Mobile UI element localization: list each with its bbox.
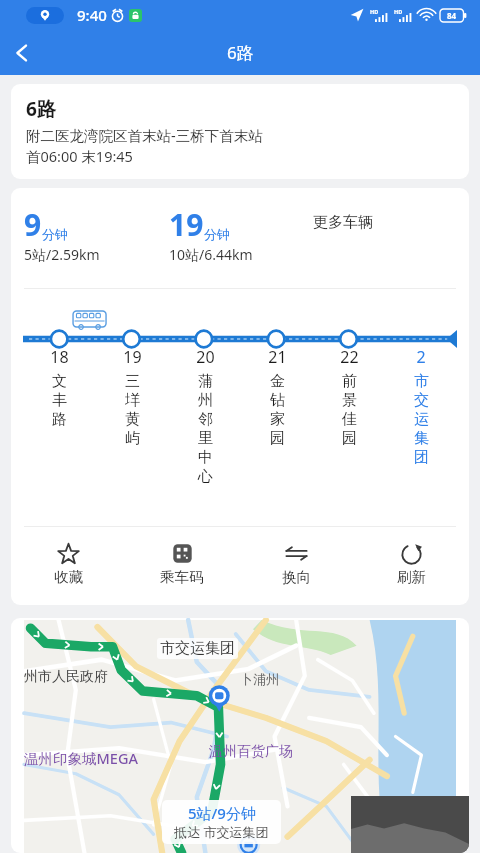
staticText: 温州印象城MEGA (24, 748, 138, 768)
staticText: 景 (342, 391, 357, 410)
staticText: 9:40 (77, 5, 107, 25)
staticText: 金 (270, 372, 285, 391)
staticText: 前 (342, 372, 357, 391)
staticText: 佳 (342, 410, 357, 429)
staticText: 园 (342, 429, 357, 448)
staticText: 运 (414, 410, 429, 429)
staticText: 22 (340, 346, 359, 368)
staticText: 19 (169, 204, 204, 245)
staticText: 黄 (125, 410, 140, 429)
staticText: 换向 (282, 568, 311, 586)
staticText: 园 (270, 429, 285, 448)
staticText: 邻 (198, 410, 213, 429)
staticText: 2 (416, 346, 426, 368)
staticText: 10站/6.44km (169, 245, 253, 264)
staticText: 州市人民政府 (24, 668, 108, 686)
staticText: 文 (52, 372, 67, 391)
staticText: 6路 (26, 96, 56, 122)
staticText: 蒲 (198, 372, 213, 391)
staticText: 交 (414, 391, 429, 410)
staticText: 收藏 (54, 568, 83, 586)
staticText: 里 (198, 429, 213, 448)
staticText: 集 (414, 429, 429, 448)
staticText: 21 (268, 346, 287, 368)
button[interactable]: Ride QR code (125, 540, 239, 588)
staticText: 抵达 市交运集团 (174, 823, 269, 841)
staticText: 市交运集团 (160, 639, 235, 658)
staticText: 6路 (227, 41, 254, 64)
button[interactable]: Refresh (354, 540, 469, 588)
button[interactable]: Back (0, 31, 44, 75)
staticText: 市 (414, 372, 429, 391)
staticText: 屿 (125, 429, 140, 448)
button[interactable]: Favorite (11, 540, 125, 588)
button[interactable]: 更多车辆 (313, 213, 373, 232)
staticText: 卜浦州 (240, 671, 279, 687)
staticText: 团 (414, 448, 429, 467)
staticText: HD (370, 8, 379, 15)
staticText: 更多车辆 (313, 213, 373, 232)
staticText: 家 (270, 410, 285, 429)
staticText: 钻 (270, 391, 285, 410)
staticText: 19 (123, 346, 142, 368)
staticText: 分钟 (42, 226, 68, 242)
staticText: 附二医龙湾院区首末站-三桥下首末站 (26, 125, 263, 145)
staticText: 分钟 (204, 226, 230, 242)
staticText: 路 (52, 410, 67, 429)
staticText: 5站/2.59km (24, 245, 100, 264)
staticText: 5站/9分钟 (188, 803, 256, 823)
staticText: 心 (198, 467, 213, 486)
staticText: 温州百货广场 (209, 743, 293, 761)
staticText: 18 (50, 346, 69, 368)
staticText: 20 (196, 346, 215, 368)
staticText: 垟 (125, 391, 140, 410)
staticText: 刷新 (397, 568, 426, 586)
staticText: 丰 (52, 391, 67, 410)
button[interactable]: 市交运集团 (11, 618, 469, 853)
staticText: 乘车码 (160, 568, 204, 586)
staticText: 三 (125, 372, 140, 391)
button[interactable]: Swap direction (239, 540, 354, 588)
staticText: HD (394, 8, 403, 15)
button[interactable]: 6路 (11, 84, 469, 179)
staticText: 首06:00 末19:45 (26, 146, 133, 166)
staticText: 9 (24, 204, 42, 245)
staticText: 中 (198, 448, 213, 467)
staticText: 84 (447, 10, 457, 21)
staticText: 州 (198, 391, 213, 410)
